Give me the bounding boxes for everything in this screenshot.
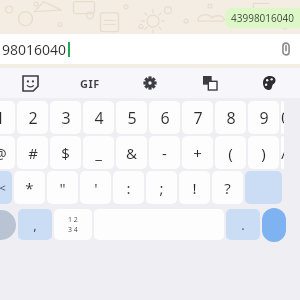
button[interactable]: Backspace: [245, 171, 282, 204]
staticText: ': [94, 178, 98, 198]
staticText: :: [126, 178, 131, 198]
staticText: 4: [94, 107, 104, 129]
staticText: 1 2: [68, 215, 78, 225]
button[interactable]: 1: [0, 101, 15, 134]
staticText: ?: [224, 178, 231, 198]
button[interactable]: *: [14, 171, 45, 204]
button[interactable]: #: [17, 136, 48, 169]
staticText: 2: [28, 107, 38, 129]
staticText: _: [95, 143, 102, 163]
staticText: /: [281, 143, 284, 163]
button[interactable]: =\<: [0, 171, 12, 204]
button[interactable]: @: [0, 136, 15, 169]
button[interactable]: 1 2: [54, 209, 92, 240]
staticText: ): [261, 143, 266, 163]
button[interactable]: _: [83, 136, 114, 169]
staticText: $: [61, 143, 70, 163]
button[interactable]: -: [149, 136, 180, 169]
button[interactable]: 7: [182, 101, 213, 134]
button[interactable]: Letters: [0, 210, 16, 240]
staticText: (: [228, 143, 233, 163]
button[interactable]: $: [50, 136, 81, 169]
button[interactable]: 3: [50, 101, 81, 134]
button[interactable]: Attach: [278, 41, 294, 57]
button[interactable]: Translate: [180, 68, 240, 98]
staticText: 98016040: [2, 40, 67, 59]
button[interactable]: 4: [83, 101, 114, 134]
staticText: .: [241, 216, 245, 234]
button[interactable]: .: [226, 209, 260, 240]
staticText: -: [162, 143, 167, 163]
button[interactable]: (: [215, 136, 246, 169]
staticText: @: [0, 143, 7, 163]
staticText: 7: [193, 107, 203, 129]
staticText: 9: [259, 107, 269, 129]
button[interactable]: 98016040: [0, 34, 300, 64]
staticText: +: [193, 143, 202, 163]
button[interactable]: :: [113, 171, 144, 204]
staticText: GIF: [80, 76, 100, 91]
button[interactable]: 0: [281, 101, 284, 134]
staticText: &: [126, 143, 137, 163]
button[interactable]: Enter: [262, 208, 286, 242]
staticText: 6: [160, 107, 170, 129]
staticText: 8: [226, 107, 236, 129]
button[interactable]: GIF: [60, 68, 120, 98]
staticText: 43998016040: [231, 11, 294, 25]
staticText: ,: [33, 216, 37, 234]
button[interactable]: Theme: [240, 68, 300, 98]
button[interactable]: 8: [215, 101, 246, 134]
button[interactable]: 43998016040: [231, 11, 294, 25]
button[interactable]: 2: [17, 101, 48, 134]
button[interactable]: ": [47, 171, 78, 204]
button[interactable]: 5: [116, 101, 147, 134]
staticText: 0: [281, 107, 284, 129]
staticText: 3: [61, 107, 71, 129]
staticText: 5: [127, 107, 137, 129]
button[interactable]: ': [80, 171, 111, 204]
button[interactable]: Stickers: [0, 68, 60, 98]
staticText: !: [192, 178, 197, 198]
staticText: =\<: [0, 180, 6, 195]
button[interactable]: !: [179, 171, 210, 204]
staticText: 3 4: [68, 225, 78, 235]
button[interactable]: ,: [18, 209, 52, 240]
button[interactable]: ?: [212, 171, 243, 204]
button[interactable]: &: [116, 136, 147, 169]
button[interactable]: Settings: [120, 68, 180, 98]
button[interactable]: 9: [248, 101, 279, 134]
button[interactable]: /: [281, 136, 284, 169]
button[interactable]: ): [248, 136, 279, 169]
button[interactable]: 6: [149, 101, 180, 134]
staticText: ": [59, 178, 66, 198]
button[interactable]: +: [182, 136, 213, 169]
staticText: #: [28, 143, 38, 163]
staticText: 1: [0, 107, 5, 129]
button[interactable]: ;: [146, 171, 177, 204]
staticText: *: [25, 178, 34, 198]
staticText: ;: [159, 178, 164, 198]
